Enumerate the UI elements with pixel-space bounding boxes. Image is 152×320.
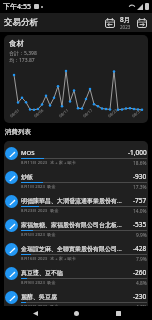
staticText: 08/17 bbox=[82, 108, 94, 118]
button[interactable]: Home bbox=[69, 306, 83, 320]
staticText: 8月16日 2023 bbox=[21, 256, 48, 261]
staticText: -428 bbox=[133, 244, 147, 253]
staticText: -230 bbox=[133, 292, 147, 301]
staticText: 下午4:55 bbox=[3, 2, 31, 12]
staticText: -535 bbox=[133, 220, 147, 229]
button[interactable]: Back bbox=[28, 306, 42, 320]
staticText: -757 bbox=[133, 196, 147, 205]
staticText: 8月23日 2023 bbox=[21, 208, 48, 213]
staticText: 08/11 bbox=[58, 108, 70, 118]
staticText: 吸金 bbox=[47, 184, 56, 189]
button[interactable]: 8月 bbox=[119, 15, 132, 30]
staticText: 8月11日 2023 bbox=[21, 160, 48, 165]
staticText: MOS bbox=[21, 149, 126, 157]
staticText: 14.0% bbox=[133, 208, 147, 213]
staticText: 吸金 bbox=[47, 280, 56, 285]
staticText: 真豆漿、豆不臨 bbox=[21, 269, 131, 277]
staticText: 8月21日 2023 bbox=[21, 304, 48, 309]
staticText: 8月9日 2023 bbox=[21, 280, 45, 285]
button[interactable]: 家福無糖、家福股份有限公司台北板… bbox=[4, 213, 148, 237]
staticText: 炒飯 bbox=[21, 173, 131, 181]
staticText: 支 + 家 + 歐卡 bbox=[50, 160, 76, 165]
staticText: 金瑞誼芝麻、全聯實業股份有限公司… bbox=[21, 245, 131, 253]
button[interactable]: 食材 bbox=[4, 35, 148, 123]
staticText: 2023 bbox=[120, 24, 131, 30]
button[interactable]: 明德陳華昌、大潤發流通事業股份有… bbox=[4, 189, 148, 213]
staticText: 7.9% bbox=[136, 256, 147, 261]
staticText: -260 bbox=[133, 268, 147, 277]
staticText: 麗酵、吳豆腐 bbox=[21, 293, 131, 301]
staticText: 08/23 bbox=[107, 108, 119, 118]
staticText: 8月1日 2023 bbox=[21, 184, 45, 189]
staticText: 17.3% bbox=[133, 184, 147, 189]
staticText: 08/06 bbox=[33, 108, 45, 118]
staticText: 8月 bbox=[120, 15, 131, 24]
button[interactable]: Previous month bbox=[102, 15, 117, 30]
button[interactable]: MOS bbox=[4, 141, 148, 165]
staticText: 08/31 bbox=[131, 108, 143, 118]
staticText: -930 bbox=[133, 172, 147, 181]
staticText: 9.9% bbox=[136, 232, 147, 237]
button[interactable]: 真豆漿、豆不臨 bbox=[4, 261, 148, 285]
staticText: 合計：5,398 bbox=[9, 50, 37, 57]
staticText: 08/01 bbox=[9, 108, 21, 118]
button[interactable]: 麗酵、吳豆腐 bbox=[4, 285, 148, 309]
staticText: 吸金 bbox=[50, 304, 59, 309]
button[interactable]: 炒飯 bbox=[4, 165, 148, 189]
staticText: 吸金 bbox=[50, 208, 59, 213]
staticText: 家福無糖、家福股份有限公司台北板… bbox=[21, 221, 131, 229]
staticText: 交易分析 bbox=[4, 17, 38, 28]
button[interactable]: Recent apps bbox=[111, 306, 125, 320]
staticText: 吸金 bbox=[47, 232, 56, 237]
staticText: 消費列表 bbox=[5, 128, 31, 136]
staticText: 支 + 家 + 歐卡 bbox=[50, 256, 76, 261]
staticText: 明德陳華昌、大潤發流通事業股份有… bbox=[21, 197, 131, 205]
button[interactable]: 金瑞誼芝麻、全聯實業股份有限公司… bbox=[4, 237, 148, 261]
staticText: 食材 bbox=[9, 39, 24, 48]
staticText: 8月5日 2023 bbox=[21, 232, 45, 237]
staticText: 4.3% bbox=[136, 304, 147, 309]
staticText: 均：173.87 bbox=[9, 57, 35, 64]
button[interactable]: Next month bbox=[134, 15, 149, 30]
staticText: 18.6% bbox=[133, 160, 147, 165]
staticText: 4.8% bbox=[136, 280, 147, 285]
staticText: -1,000 bbox=[128, 148, 147, 157]
